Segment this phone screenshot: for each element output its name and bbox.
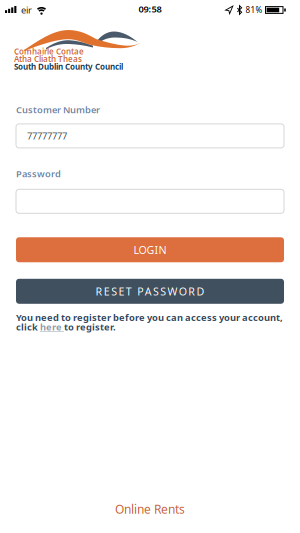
staticText: Comhairle Contae: [14, 46, 84, 57]
staticText: here: [40, 321, 64, 333]
staticText: Online Rents: [115, 501, 185, 517]
staticText: You need to register before you can acce…: [16, 311, 283, 324]
button[interactable]: Password: [16, 189, 284, 213]
staticText: to register.: [64, 321, 116, 333]
staticText: 77777777: [27, 130, 67, 142]
staticText: 09:58: [138, 3, 161, 15]
staticText: RESET PASSWORD: [96, 284, 204, 298]
button[interactable]: RESET PASSWORD: [16, 279, 284, 304]
staticText: 81%: [245, 5, 262, 15]
staticText: click: [16, 321, 40, 333]
staticText: Átha Cliath Theas: [14, 54, 82, 64]
staticText: eir: [21, 4, 32, 16]
staticText: South Dublin County Council: [14, 61, 123, 72]
staticText: LOGIN: [133, 243, 166, 257]
button[interactable]: LOGIN: [16, 237, 284, 262]
button[interactable]: here: [40, 321, 64, 333]
staticText: Customer Number: [16, 103, 100, 116]
button[interactable]: Customer Number: [16, 124, 284, 148]
staticText: Password: [16, 167, 61, 180]
